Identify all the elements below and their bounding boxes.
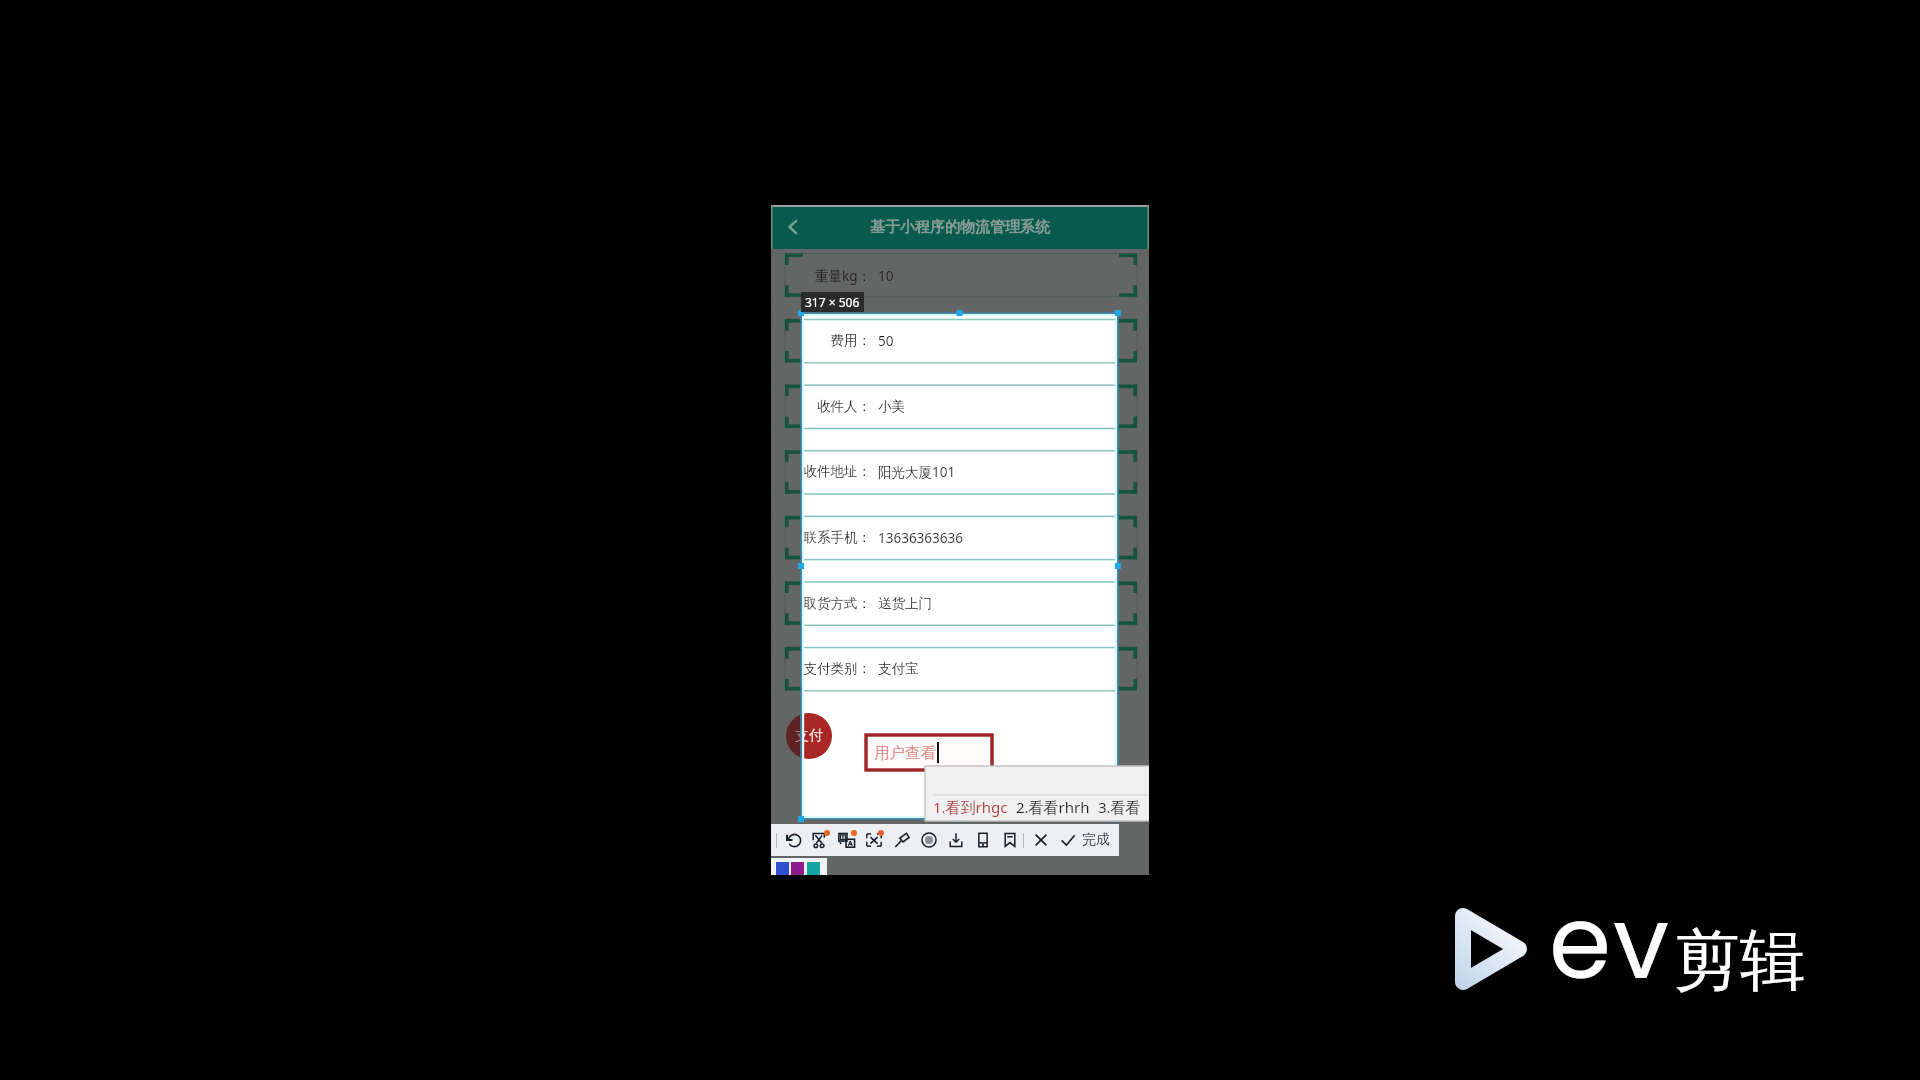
button[interactable]: 收件人：	[771, 385, 1149, 428]
button[interactable]: 费用：	[771, 319, 1149, 362]
button[interactable]: 收件地址：	[771, 450, 1149, 493]
staticText: 联系手机：	[771, 529, 871, 546]
staticText: 2.看看rhrh	[1016, 797, 1090, 817]
staticText: 支付类别：	[771, 660, 871, 677]
button[interactable]: 支付类别：	[771, 647, 1149, 690]
button[interactable]: 重量kg：	[771, 254, 1149, 297]
staticText: 完成	[1082, 831, 1110, 849]
button[interactable]: 收件人：	[771, 385, 1149, 428]
staticText: 13636363636	[878, 529, 963, 547]
staticText: 支付宝	[878, 660, 919, 677]
staticText: 支付	[795, 727, 823, 745]
staticText: 10	[878, 267, 894, 285]
staticText: 阳光大厦101	[878, 463, 956, 481]
button[interactable]: 用户查看	[866, 735, 992, 770]
staticText: 用户查看	[874, 743, 936, 763]
button[interactable]: Extract text	[860, 826, 888, 854]
staticText: 支付类别：	[771, 660, 871, 677]
button[interactable]: 重量kg：	[771, 254, 1149, 297]
staticText: 13636363636	[878, 529, 963, 547]
button[interactable]: Translate	[833, 826, 861, 854]
button[interactable]: Pin	[888, 826, 916, 854]
staticText: 小美	[878, 398, 905, 415]
staticText: 1.看到rhgc	[933, 797, 1008, 817]
button[interactable]: 完成	[1054, 826, 1110, 854]
staticText: 费用：	[771, 332, 871, 349]
staticText: 取货方式：	[771, 595, 871, 612]
staticText: 阳光大厦101	[878, 463, 956, 481]
staticText: 重量kg：	[771, 267, 871, 285]
staticText: 基于小程序的物流管理系统	[870, 218, 1050, 237]
button[interactable]: Cancel	[1027, 826, 1055, 854]
button[interactable]: 收件地址：	[771, 450, 1149, 493]
staticText: 重量kg：	[771, 267, 871, 285]
button[interactable]: 费用：	[771, 319, 1149, 362]
button[interactable]: 317 × 506	[805, 294, 860, 310]
button[interactable]: 取货方式：	[771, 582, 1149, 625]
staticText: 剪辑	[1674, 919, 1806, 1002]
staticText: 支付宝	[878, 660, 919, 677]
button[interactable]: Undo	[779, 826, 807, 854]
staticText: 用户查看	[874, 743, 936, 763]
button[interactable]: Back	[776, 210, 810, 244]
button[interactable]: Bookmark	[996, 826, 1024, 854]
button[interactable]: 支付	[786, 713, 832, 759]
staticText: 取货方式：	[771, 595, 871, 612]
staticText: 小美	[878, 398, 905, 415]
button[interactable]: 联系手机：	[771, 516, 1149, 559]
button[interactable]: 支付类别：	[771, 647, 1149, 690]
staticText: 3.看看	[1098, 797, 1141, 817]
button[interactable]: Back	[776, 210, 810, 244]
staticText: 收件地址：	[771, 463, 871, 480]
staticText: 317 × 506	[805, 294, 860, 310]
button[interactable]: 用户查看	[866, 735, 992, 770]
staticText: 收件人：	[771, 398, 871, 415]
button[interactable]: Send to phone	[969, 826, 997, 854]
staticText: 10	[878, 267, 894, 285]
staticText: 收件地址：	[771, 463, 871, 480]
button[interactable]: Save	[942, 826, 970, 854]
staticText: 50	[878, 332, 894, 350]
button[interactable]: Record	[915, 826, 943, 854]
staticText: 送货上门	[878, 595, 932, 612]
button[interactable]: 联系手机：	[771, 516, 1149, 559]
staticText: 收件人：	[771, 398, 871, 415]
button[interactable]: 支付	[786, 713, 832, 759]
staticText: 基于小程序的物流管理系统	[870, 218, 1050, 237]
button[interactable]: Crop	[806, 826, 834, 854]
staticText: 50	[878, 332, 894, 350]
staticText: 费用：	[771, 332, 871, 349]
staticText: ev	[1549, 873, 1672, 1013]
staticText: 联系手机：	[771, 529, 871, 546]
button[interactable]: 取货方式：	[771, 582, 1149, 625]
staticText: 送货上门	[878, 595, 932, 612]
staticText: 支付	[795, 727, 823, 745]
